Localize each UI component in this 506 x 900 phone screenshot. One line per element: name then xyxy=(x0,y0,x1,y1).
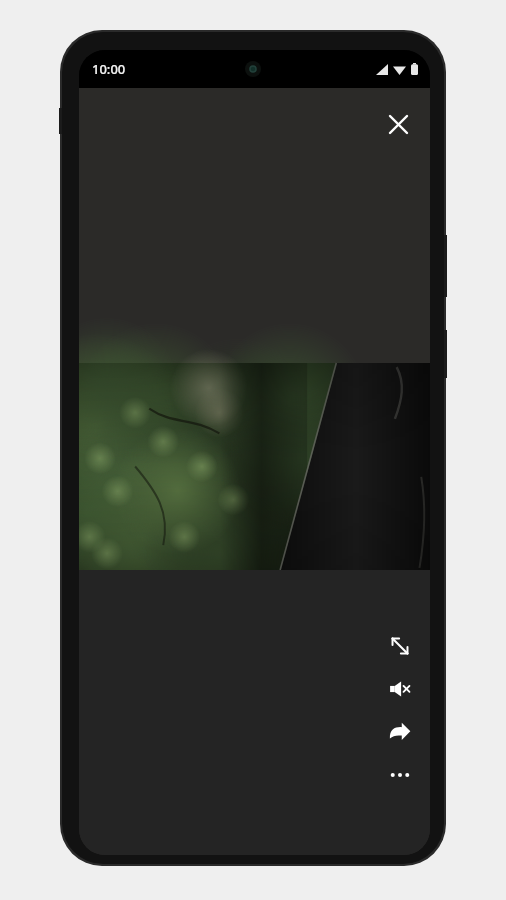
staticText: 10:00 xyxy=(92,60,126,78)
button[interactable]: Expand to full screen xyxy=(378,624,422,667)
button[interactable]: Unmute xyxy=(378,667,422,710)
button[interactable]: Share xyxy=(378,710,422,753)
button[interactable]: Close xyxy=(376,102,420,146)
button[interactable]: More options xyxy=(378,753,422,796)
